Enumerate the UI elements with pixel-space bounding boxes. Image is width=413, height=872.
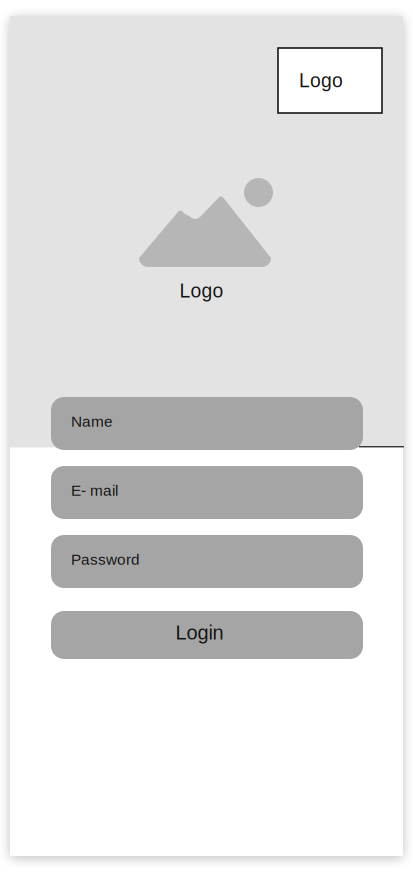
staticText: E- mail xyxy=(71,482,118,499)
button[interactable]: Password xyxy=(51,535,363,588)
button[interactable]: E- mail xyxy=(51,466,363,519)
button[interactable]: Name xyxy=(51,397,363,450)
staticText: Password xyxy=(71,551,140,568)
staticText: Name xyxy=(71,413,113,430)
button[interactable]: Logo xyxy=(278,48,382,113)
button[interactable]: Login xyxy=(51,611,363,659)
staticText: Logo xyxy=(299,70,343,91)
staticText: Login xyxy=(175,621,223,644)
staticText: Logo xyxy=(179,280,223,302)
